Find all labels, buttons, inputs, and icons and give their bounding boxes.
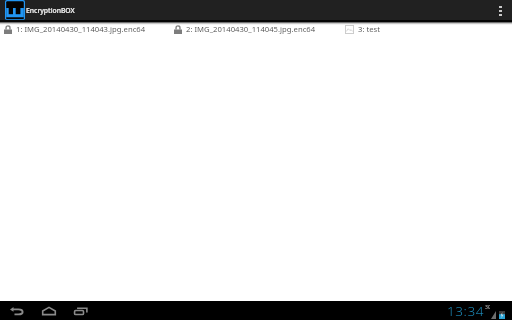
button[interactable]: Home [33, 301, 65, 320]
button[interactable]: 3: test [341, 23, 512, 36]
button[interactable]: Back [1, 301, 33, 320]
button[interactable]: More options [488, 0, 512, 20]
button[interactable]: 2: IMG_20140430_114045.jpg.enc64 [170, 23, 341, 36]
staticText: 13:34 [447, 302, 485, 320]
staticText: 3: test [358, 24, 381, 34]
button[interactable]: Recent apps [65, 301, 97, 320]
staticText: 1: IMG_20140430_114043.jpg.enc64 [16, 24, 146, 34]
staticText: 3G [485, 304, 490, 311]
staticText: 2: IMG_20140430_114045.jpg.enc64 [186, 24, 316, 34]
staticText: EncryptionBOX [26, 6, 75, 15]
button[interactable]: 1: IMG_20140430_114043.jpg.enc64 [0, 23, 170, 36]
